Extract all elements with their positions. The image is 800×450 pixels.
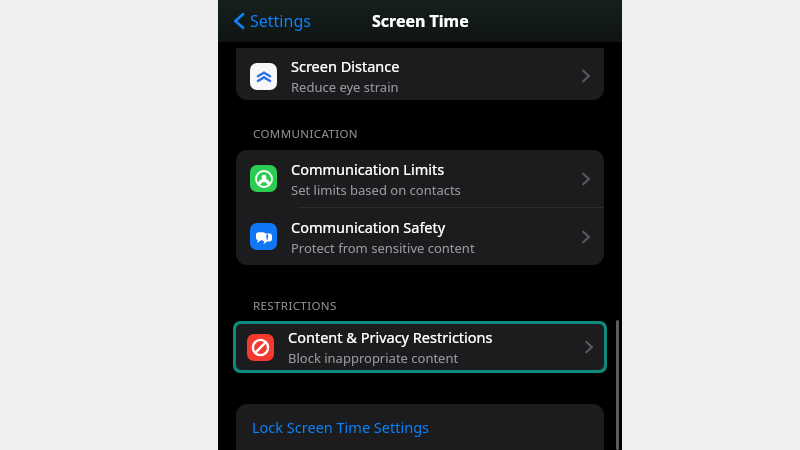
other: Screen Distance — [250, 63, 277, 90]
staticText: RESTRICTIONS — [253, 298, 337, 314]
button[interactable]: Communication Safety — [236, 208, 604, 265]
button[interactable]: Lock Screen Time Settings — [236, 404, 604, 450]
staticText: Communication Safety — [291, 217, 446, 237]
staticText: Lock Screen Time Settings — [252, 417, 430, 437]
button[interactable]: Content and Privacy Restrictions — [236, 324, 604, 370]
staticText: Content & Privacy Restrictions — [288, 327, 493, 347]
other: Content and Privacy Restrictions — [247, 334, 274, 361]
staticText: Block inappropriate content — [288, 349, 459, 367]
other: Communication Limits — [250, 165, 277, 192]
other: Communication Safety — [250, 223, 277, 250]
staticText: COMMUNICATION — [253, 126, 358, 142]
button[interactable]: Communication Limits — [236, 150, 604, 207]
staticText: Protect from sensitive content — [291, 239, 475, 257]
staticText: Set limits based on contacts — [291, 181, 461, 199]
button[interactable]: Settings — [230, 6, 315, 36]
staticText: Screen Distance — [291, 56, 400, 76]
staticText: Screen Time — [372, 10, 469, 32]
staticText: Reduce eye strain — [291, 78, 399, 96]
button[interactable]: Screen Distance — [236, 48, 604, 100]
staticText: Communication Limits — [291, 159, 445, 179]
staticText: Settings — [250, 10, 311, 32]
